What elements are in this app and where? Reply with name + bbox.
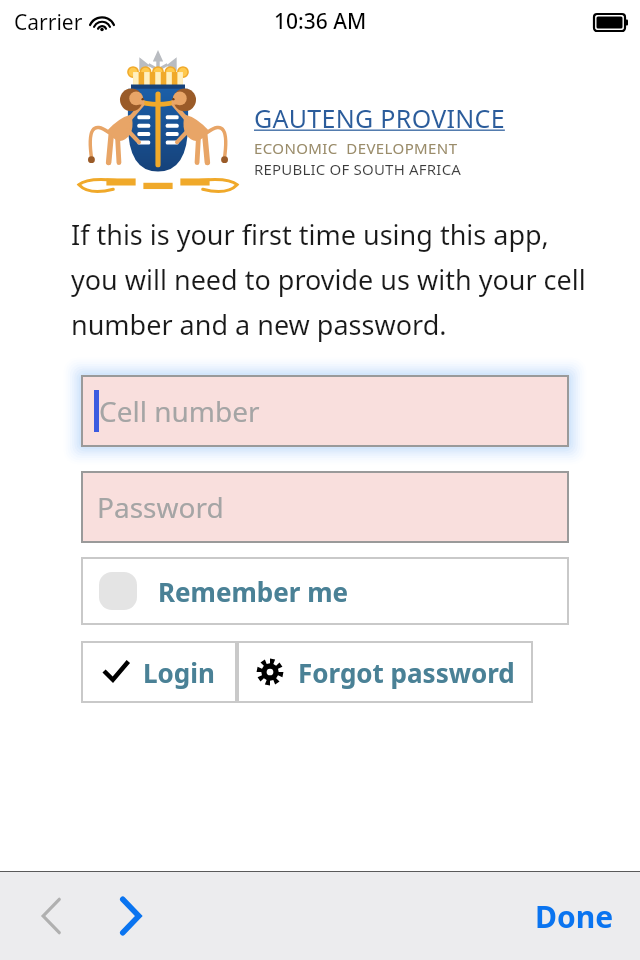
staticText: GAUTENG PROVINCE [254,101,505,135]
button[interactable]: Password [81,471,569,543]
button[interactable]: Login [81,641,237,703]
staticText: 10:36 AM [274,7,367,36]
staticText: ECONOMIC DEVELOPMENT [254,138,458,158]
staticText: Password [97,488,224,526]
staticText: Cell number [99,392,260,430]
staticText: Remember me [158,574,349,609]
staticText: Carrier [14,8,83,37]
button[interactable]: Cell number [81,375,569,447]
staticText: Forgot password [298,655,515,690]
button[interactable]: Previous field [26,890,78,942]
button[interactable]: Forgot password [237,641,533,703]
button[interactable]: Done [525,888,624,945]
staticText: Login [143,655,215,690]
staticText: Done [535,896,614,937]
button[interactable]: Remember me [81,557,569,625]
staticText: If this is your first time using this ap… [71,216,592,343]
button[interactable]: Next field [104,890,156,942]
staticText: REPUBLIC OF SOUTH AFRICA [254,159,462,179]
